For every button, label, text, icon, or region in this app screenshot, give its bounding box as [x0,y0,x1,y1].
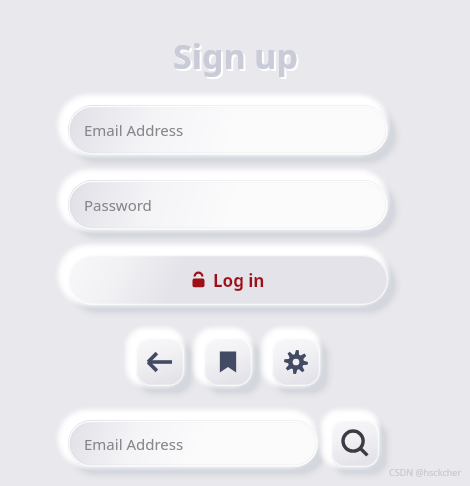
staticText: Password [84,195,152,215]
button[interactable]: Log in [68,255,388,305]
staticText: Email Address [84,120,184,140]
staticText: Sign up [175,35,300,81]
staticText: Email Address [84,434,184,454]
button[interactable]: Bookmark [204,338,252,386]
button[interactable]: Settings [272,338,320,386]
button[interactable]: Email Address [68,105,388,155]
button[interactable]: Email Address [68,420,318,467]
staticText: CSDN @hsckcher [389,466,462,478]
button[interactable]: Password [68,180,388,230]
staticText: Sign up [173,33,298,79]
staticText: Log in [213,269,265,292]
button[interactable]: Back [136,338,184,386]
button[interactable]: Search [331,420,379,467]
